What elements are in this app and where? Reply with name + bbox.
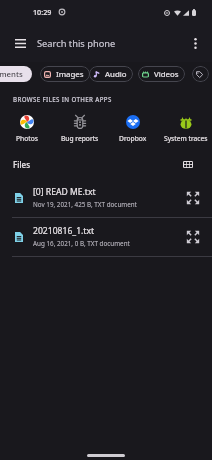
staticText: Search this phone xyxy=(37,37,116,50)
staticText: Dropbox xyxy=(119,134,147,143)
staticText: System traces xyxy=(164,134,208,143)
staticText: Photos xyxy=(16,134,38,143)
button[interactable] xyxy=(192,66,209,82)
button[interactable]: Images xyxy=(40,66,90,82)
button[interactable]: System traces xyxy=(159,115,212,143)
staticText: Audio xyxy=(105,69,127,80)
button[interactable]: Dropbox xyxy=(106,115,159,143)
staticText: [0] READ ME.txt xyxy=(33,186,96,198)
staticText: Bug reports xyxy=(61,134,99,143)
staticText: Videos xyxy=(154,69,179,80)
button[interactable]: Switch to grid view xyxy=(178,154,198,174)
button[interactable]: Videos xyxy=(138,66,185,82)
button[interactable]: Expand xyxy=(183,227,203,247)
staticText: Nov 19, 2021, 425 B, TXT document xyxy=(33,200,137,209)
button[interactable]: Documents xyxy=(0,66,32,82)
button[interactable]: Photos xyxy=(0,115,53,143)
staticText: Documents xyxy=(0,69,23,80)
button[interactable]: Audio xyxy=(89,66,133,82)
button[interactable]: Expand xyxy=(183,188,203,208)
staticText: 10:29 xyxy=(33,7,52,17)
button[interactable]: [0] READ ME.txt xyxy=(0,178,212,218)
button[interactable]: Open navigation menu xyxy=(7,30,33,56)
staticText: BROWSE FILES IN OTHER APPS xyxy=(13,95,112,103)
button[interactable]: More options xyxy=(182,30,208,56)
staticText: Aug 16, 2021, 0 B, TXT document xyxy=(33,239,130,248)
staticText: Images xyxy=(56,69,84,80)
button[interactable]: 20210816_1.txt xyxy=(0,217,212,257)
staticText: 20210816_1.txt xyxy=(33,225,95,237)
staticText: Files xyxy=(13,159,31,170)
button[interactable]: Bug reports xyxy=(53,115,106,143)
